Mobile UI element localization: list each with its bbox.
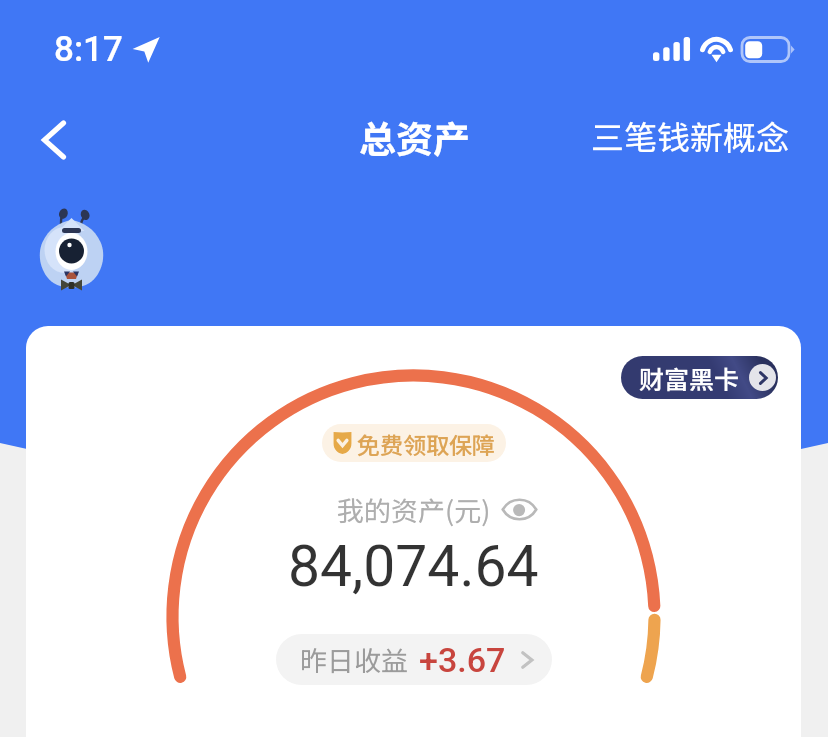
staticText: 三笔钱新概念 xyxy=(591,112,789,160)
staticText: 总资产 xyxy=(359,110,470,164)
button[interactable]: Toggle amount visibility xyxy=(500,494,539,525)
button[interactable]: 昨日收益 xyxy=(276,634,552,685)
button[interactable]: 免费领取保障 xyxy=(322,424,506,462)
staticText: 财富黑卡 xyxy=(639,360,740,396)
staticText: 84,074.64 xyxy=(288,533,539,600)
staticText: 8:17 xyxy=(54,29,123,70)
staticText: +3.67 xyxy=(419,640,506,680)
staticText: 我的资产(元) xyxy=(337,490,491,529)
button[interactable]: 三笔钱新概念 xyxy=(577,104,803,168)
staticText: 免费领取保障 xyxy=(357,427,495,460)
button[interactable]: 财富黑卡 xyxy=(621,356,778,399)
staticText: 昨日收益 xyxy=(300,640,408,679)
button[interactable]: Back xyxy=(24,112,80,168)
